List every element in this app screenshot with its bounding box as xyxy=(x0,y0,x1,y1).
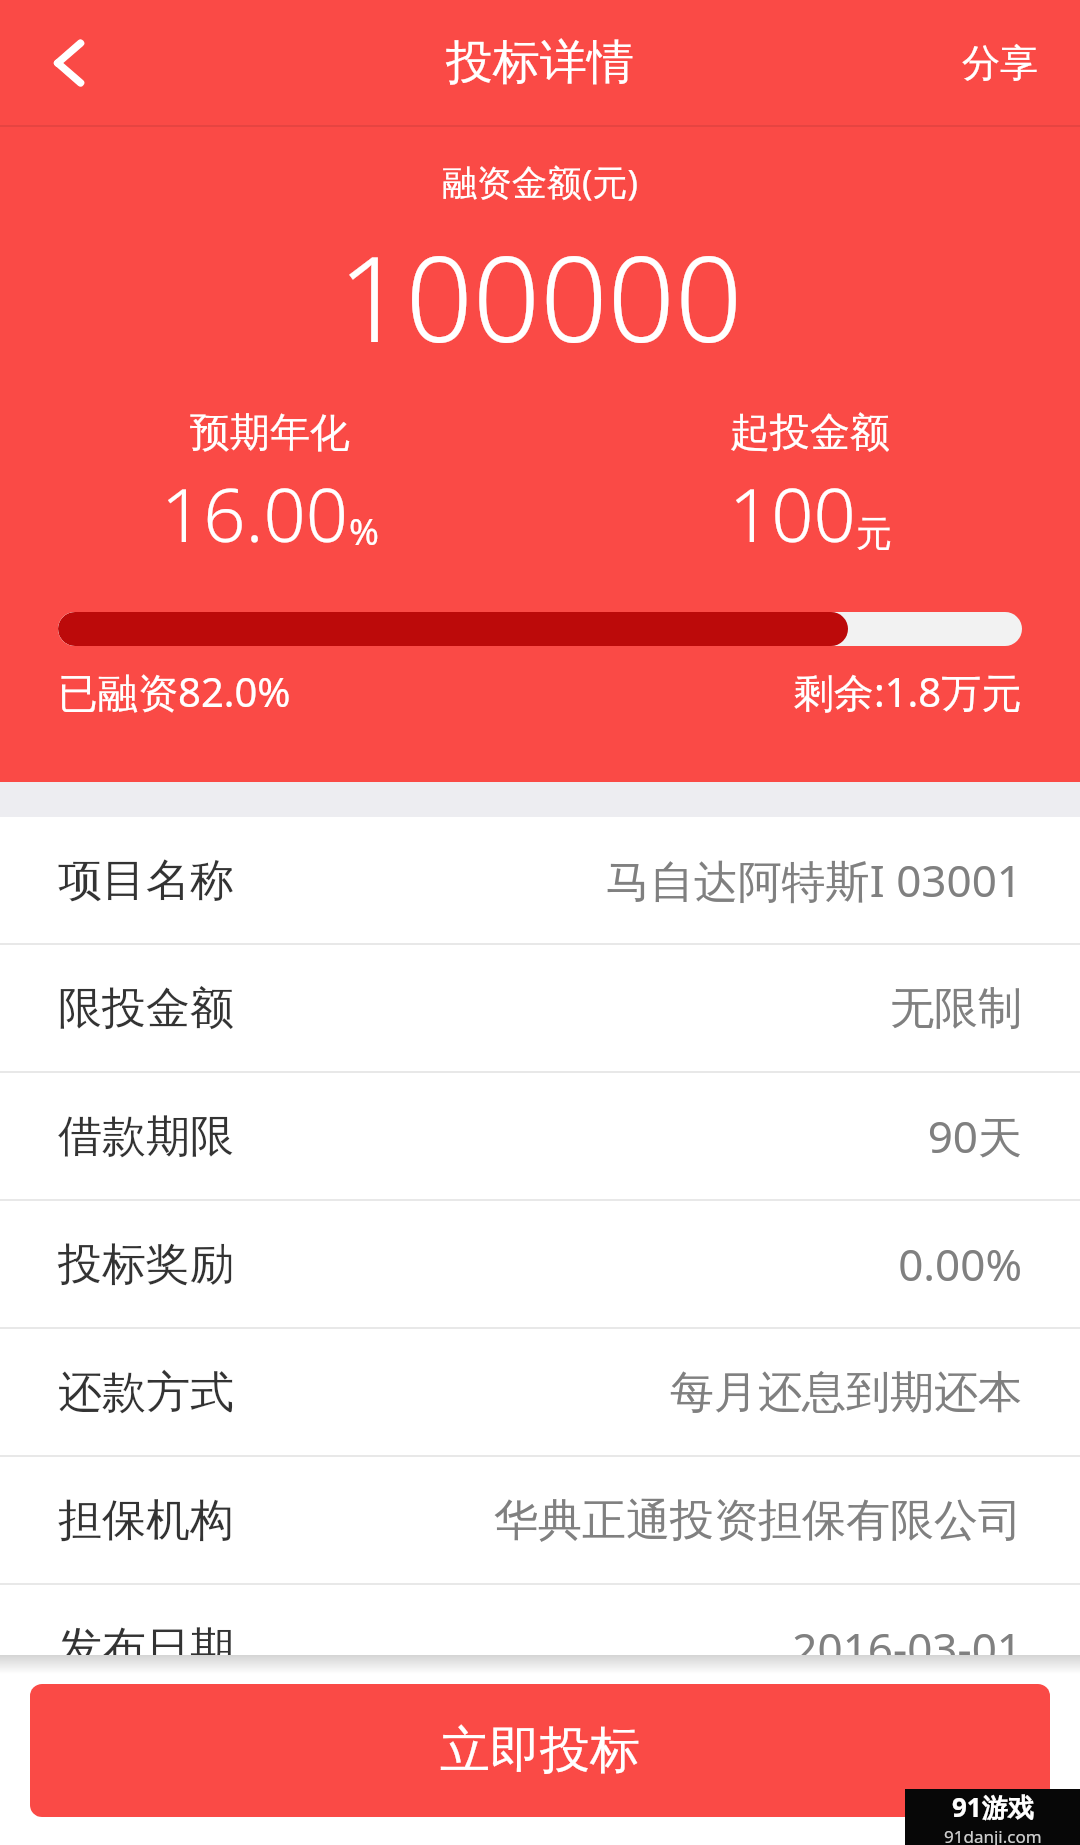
staticText: 0.00% xyxy=(898,1234,1022,1294)
staticText: 100 xyxy=(729,463,856,564)
staticText: 元 xyxy=(856,511,892,556)
staticText: 分享 xyxy=(962,39,1038,87)
staticText: 华典正通投资担保有限公司 xyxy=(494,1493,1022,1548)
staticText: 预期年化 xyxy=(190,407,350,457)
staticText: 100000 xyxy=(338,216,743,377)
button[interactable]: Back xyxy=(22,15,118,111)
button[interactable]: 发布日期 xyxy=(0,1585,1080,1711)
staticText: 融资金额(元) xyxy=(442,158,639,206)
button[interactable]: 借款期限 xyxy=(0,1073,1080,1199)
staticText: 项目名称 xyxy=(58,853,234,908)
staticText: 已融资82.0% xyxy=(58,664,291,719)
button[interactable]: 分享 xyxy=(946,23,1054,103)
staticText: 限投金额 xyxy=(58,981,234,1036)
button[interactable]: 立即投标 xyxy=(30,1684,1050,1817)
staticText: 91danji.com xyxy=(944,1825,1042,1845)
staticText: 还款方式 xyxy=(58,1365,234,1420)
staticText: 马自达阿特斯I 03001 xyxy=(605,850,1022,910)
staticText: 起投金额 xyxy=(730,407,890,457)
button[interactable]: 投标奖励 xyxy=(0,1201,1080,1327)
button[interactable]: 项目名称 xyxy=(0,817,1080,943)
staticText: 剩余:1.8万元 xyxy=(794,664,1022,719)
staticText: 90天 xyxy=(927,1106,1022,1166)
staticText: 投标奖励 xyxy=(58,1237,234,1292)
button[interactable]: 担保机构 xyxy=(0,1457,1080,1583)
staticText: 借款期限 xyxy=(58,1109,234,1164)
staticText: 投标详情 xyxy=(446,33,634,92)
staticText: 91游戏 xyxy=(952,1789,1034,1825)
staticText: 2016-03-01 xyxy=(792,1618,1022,1678)
staticText: % xyxy=(349,507,379,556)
button[interactable]: 还款方式 xyxy=(0,1329,1080,1455)
staticText: 立即投标 xyxy=(440,1719,640,1782)
button[interactable]: 限投金额 xyxy=(0,945,1080,1071)
staticText: 担保机构 xyxy=(58,1493,234,1548)
staticText: 16.00 xyxy=(161,463,349,564)
staticText: 发布日期 xyxy=(58,1621,234,1676)
staticText: 无限制 xyxy=(890,981,1022,1036)
staticText: 每月还息到期还本 xyxy=(670,1365,1022,1420)
